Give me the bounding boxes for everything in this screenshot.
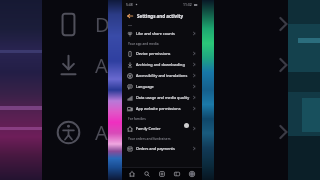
staticText: Your orders and fundraisers (128, 137, 171, 141)
staticText: Accessibility and translations (136, 73, 188, 78)
staticText: For families (128, 117, 146, 121)
staticText: Acces (95, 119, 148, 146)
staticText: Language (136, 84, 154, 89)
staticText: 5:48 (126, 2, 133, 7)
button[interactable]: App website permissions (122, 103, 202, 114)
button[interactable]: Language (122, 81, 202, 92)
button[interactable]: Family Center (122, 123, 202, 134)
button[interactable]: Like and share counts (122, 28, 202, 39)
button[interactable]: Reels (172, 169, 182, 179)
button[interactable]: Search (142, 169, 152, 179)
staticText: Like and share counts (136, 31, 175, 36)
staticText: Device (95, 11, 157, 38)
button[interactable]: Data usage and media quality (122, 92, 202, 103)
button[interactable]: Profile (187, 169, 197, 179)
button[interactable]: Device permissions (122, 48, 202, 59)
button[interactable]: Archiving and downloading (122, 59, 202, 70)
staticText: Family Center (136, 126, 161, 131)
staticText: 11:32 (183, 2, 192, 7)
staticText: Orders and payments (136, 146, 175, 151)
staticText: Settings and activity (137, 13, 184, 19)
button[interactable]: Create (157, 169, 167, 179)
staticText: Archiv (95, 52, 153, 79)
staticText: Your app and media (128, 42, 159, 46)
staticText: Data usage and media quality (136, 95, 190, 100)
staticText: App website permissions (136, 106, 181, 111)
button[interactable]: Back (126, 12, 134, 20)
staticText: Archiving and downloading (136, 62, 185, 67)
button[interactable]: Orders and payments (122, 143, 202, 154)
button[interactable]: Accessibility and translations (122, 70, 202, 81)
button[interactable]: Home (127, 169, 137, 179)
staticText: Device permissions (136, 51, 171, 56)
